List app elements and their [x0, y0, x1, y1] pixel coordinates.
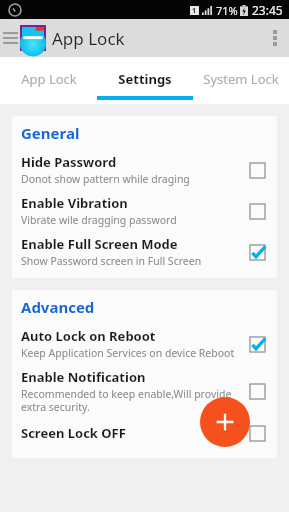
- staticText: Keep Application Services on device Rebo…: [21, 346, 235, 360]
- staticText: Recommended to keep enable,Will provide …: [21, 387, 238, 414]
- staticText: Settings: [118, 70, 172, 88]
- staticText: 1: [192, 6, 197, 15]
- button[interactable]: Enable Vibration: [12, 190, 277, 231]
- button[interactable]: System Lock: [193, 57, 289, 100]
- staticText: 71%: [216, 3, 238, 18]
- staticText: Enable Vibration: [21, 194, 128, 212]
- staticText: General: [21, 123, 80, 143]
- button[interactable]: More options: [261, 20, 289, 56]
- button[interactable]: Screen Lock OFF: [12, 418, 277, 448]
- staticText: Auto Lock on Reboot: [21, 327, 156, 345]
- staticText: Advanced: [21, 297, 95, 317]
- staticText: System Lock: [203, 70, 279, 88]
- button[interactable]: App Lock: [0, 57, 97, 100]
- staticText: App Lock: [21, 70, 77, 88]
- staticText: 23:45: [252, 2, 283, 18]
- button[interactable]: Menu: [0, 23, 20, 53]
- staticText: Vibrate wile dragging password: [21, 213, 177, 227]
- button[interactable]: Auto Lock on Reboot: [12, 323, 277, 364]
- button[interactable]: Settings: [97, 57, 193, 100]
- button[interactable]: Enable Full Screen Mode: [12, 231, 277, 272]
- staticText: Enable Full Screen Mode: [21, 235, 178, 253]
- staticText: Hide Password: [21, 153, 117, 171]
- button[interactable]: Hide Password: [12, 149, 277, 190]
- staticText: App Lock: [52, 27, 125, 50]
- staticText: Donot show pattern while draging: [21, 172, 190, 186]
- button[interactable]: Enable Notification: [12, 364, 277, 418]
- staticText: Enable Notification: [21, 368, 146, 386]
- staticText: Show Password screen in Full Screen: [21, 254, 202, 268]
- button[interactable]: Add: [200, 397, 250, 447]
- staticText: Screen Lock OFF: [21, 424, 126, 442]
